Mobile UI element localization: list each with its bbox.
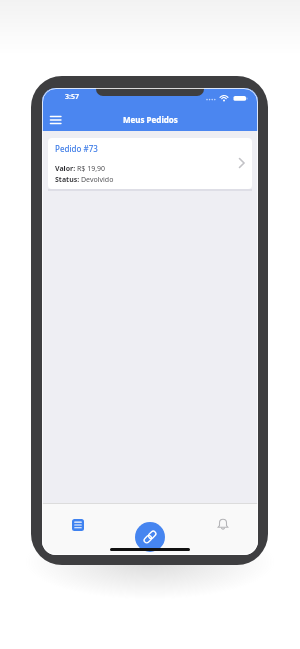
button[interactable] [72,519,84,531]
button[interactable]: Pedido #73 [48,138,252,189]
button[interactable] [216,517,230,531]
button[interactable] [46,112,66,128]
staticText: Status: Devolvido [55,175,114,185]
staticText: Meus Pedidos [123,114,178,125]
button[interactable] [135,522,165,552]
staticText: Pedido #73 [55,143,98,154]
staticText: 3:57 [65,92,79,102]
staticText: Valor: R$ 19,90 [55,164,106,174]
